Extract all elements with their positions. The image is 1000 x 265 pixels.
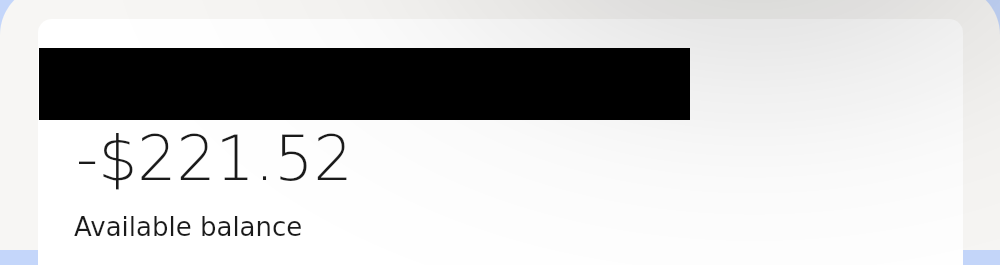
staticText: Available balance xyxy=(74,212,303,242)
button[interactable]: -$221.52 xyxy=(38,19,963,265)
staticText: -$221.52 xyxy=(76,123,353,195)
